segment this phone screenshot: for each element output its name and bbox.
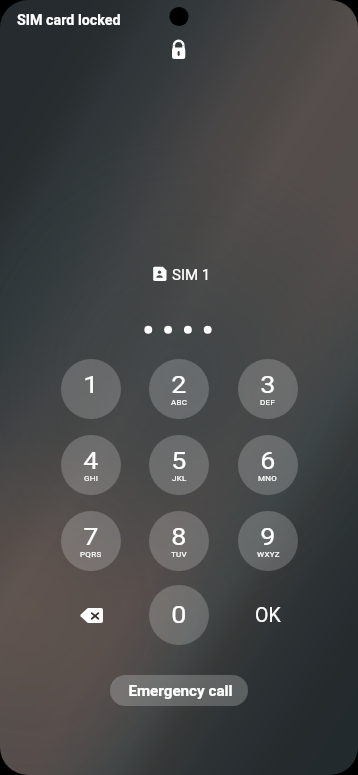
staticText: MNO [258,474,278,483]
staticText: WXYZ [257,550,280,559]
button[interactable]: 8 [149,511,209,571]
staticText: JKL [172,474,187,483]
button[interactable]: 9 [238,511,298,571]
button[interactable]: 0 [149,585,209,645]
staticText: PQRS [80,550,102,559]
staticText: SIM 1 [172,266,211,284]
button[interactable]: Emergency call [110,675,248,706]
staticText: 2 [171,371,187,399]
button[interactable]: OK [238,585,298,645]
button[interactable]: 4 [61,435,121,495]
staticText: OK [255,604,281,627]
staticText: DEF [260,398,276,407]
staticText: 7 [83,523,99,551]
staticText: SIM card locked [17,12,121,29]
staticText: GHI [84,474,99,483]
staticText: 4 [83,447,99,475]
button[interactable]: 7 [61,511,121,571]
staticText: 1 [83,371,99,399]
staticText: 6 [260,447,276,475]
staticText: Emergency call [128,682,233,700]
staticText: ABC [171,398,188,407]
staticText: 5 [171,447,187,475]
button[interactable]: 3 [238,359,298,419]
staticText: 9 [260,523,276,551]
button[interactable]: 2 [149,359,209,419]
staticText: 0 [171,601,187,629]
button[interactable]: 1 [61,359,121,419]
button[interactable]: Delete [61,585,121,645]
staticText: 3 [260,371,276,399]
staticText: TUV [171,550,187,559]
staticText: 8 [171,523,187,551]
button[interactable]: 6 [238,435,298,495]
button[interactable]: 5 [149,435,209,495]
